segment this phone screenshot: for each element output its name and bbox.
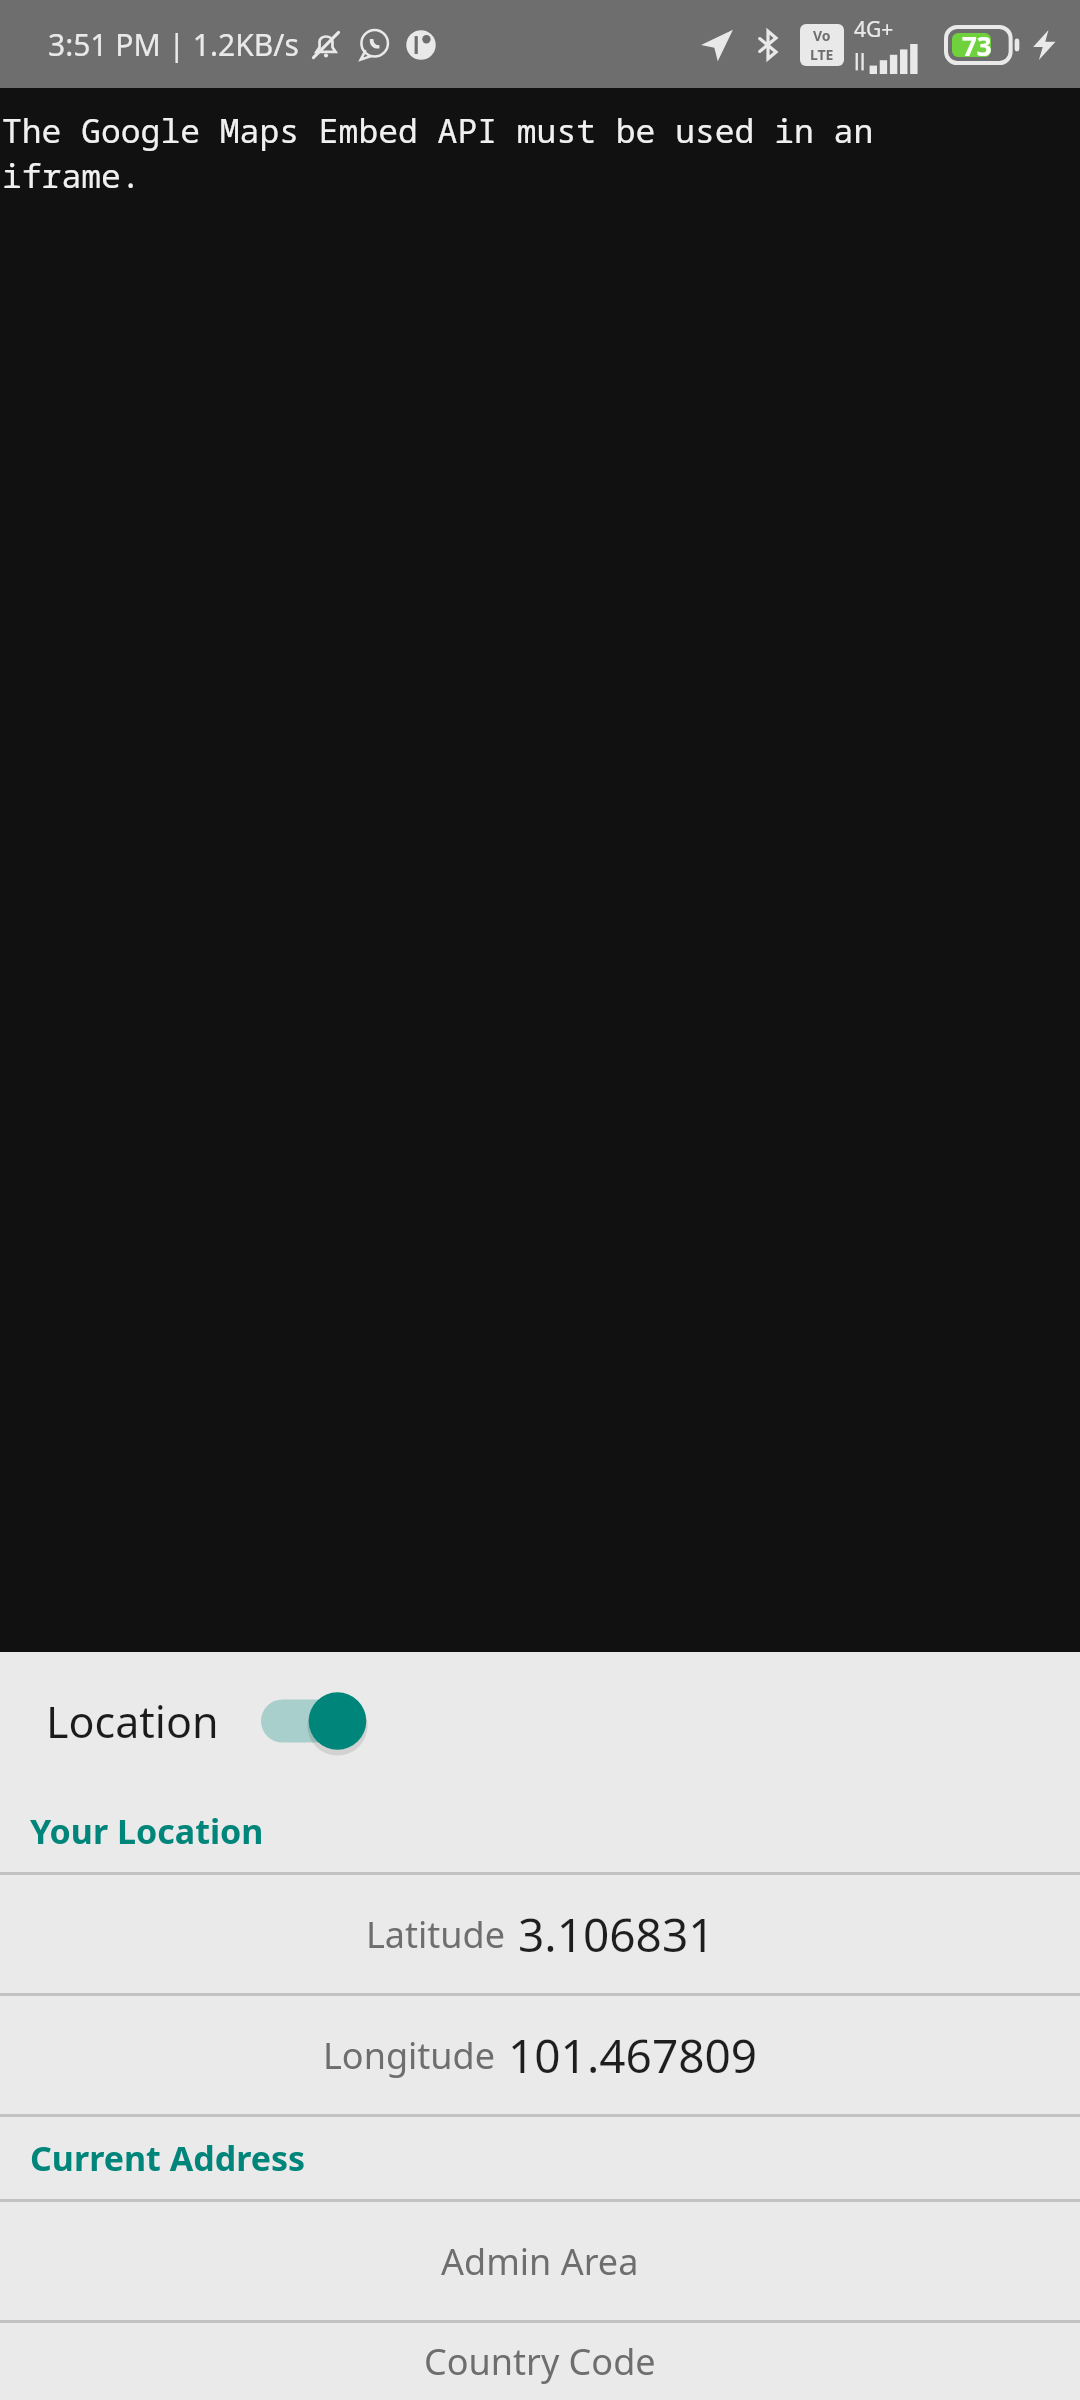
button[interactable]: Your Location	[0, 1790, 1080, 1872]
staticText: Current Address	[30, 2135, 306, 2181]
button[interactable]: Location	[0, 1652, 1080, 1790]
staticText: LTE	[810, 45, 834, 64]
staticText: Latitude	[366, 1910, 506, 1959]
button[interactable]: Current Address	[0, 2117, 1080, 2199]
staticText: Your Location	[30, 1808, 264, 1854]
staticText: The Google Maps Embed API must be used i…	[2, 108, 874, 197]
staticText: 4G+	[854, 15, 894, 44]
staticText: Longitude	[323, 2031, 496, 2080]
staticText: Country Code	[424, 2337, 656, 2386]
staticText: 73	[962, 28, 992, 63]
staticText: 3:51 PM | 1.2KB/s	[48, 24, 299, 65]
staticText: Vo	[813, 26, 831, 45]
button[interactable]: Admin Area	[0, 2202, 1080, 2320]
button[interactable]: Longitude	[0, 1996, 1080, 2114]
staticText: 101.467809	[508, 2024, 758, 2087]
staticText: 3.106831	[518, 1903, 715, 1966]
staticText: Admin Area	[441, 2237, 639, 2286]
button[interactable]: Latitude	[0, 1875, 1080, 1993]
button[interactable]: Location toggle, on	[261, 1685, 373, 1757]
staticText: Location	[46, 1692, 219, 1751]
button[interactable]: Country Code	[0, 2323, 1080, 2400]
